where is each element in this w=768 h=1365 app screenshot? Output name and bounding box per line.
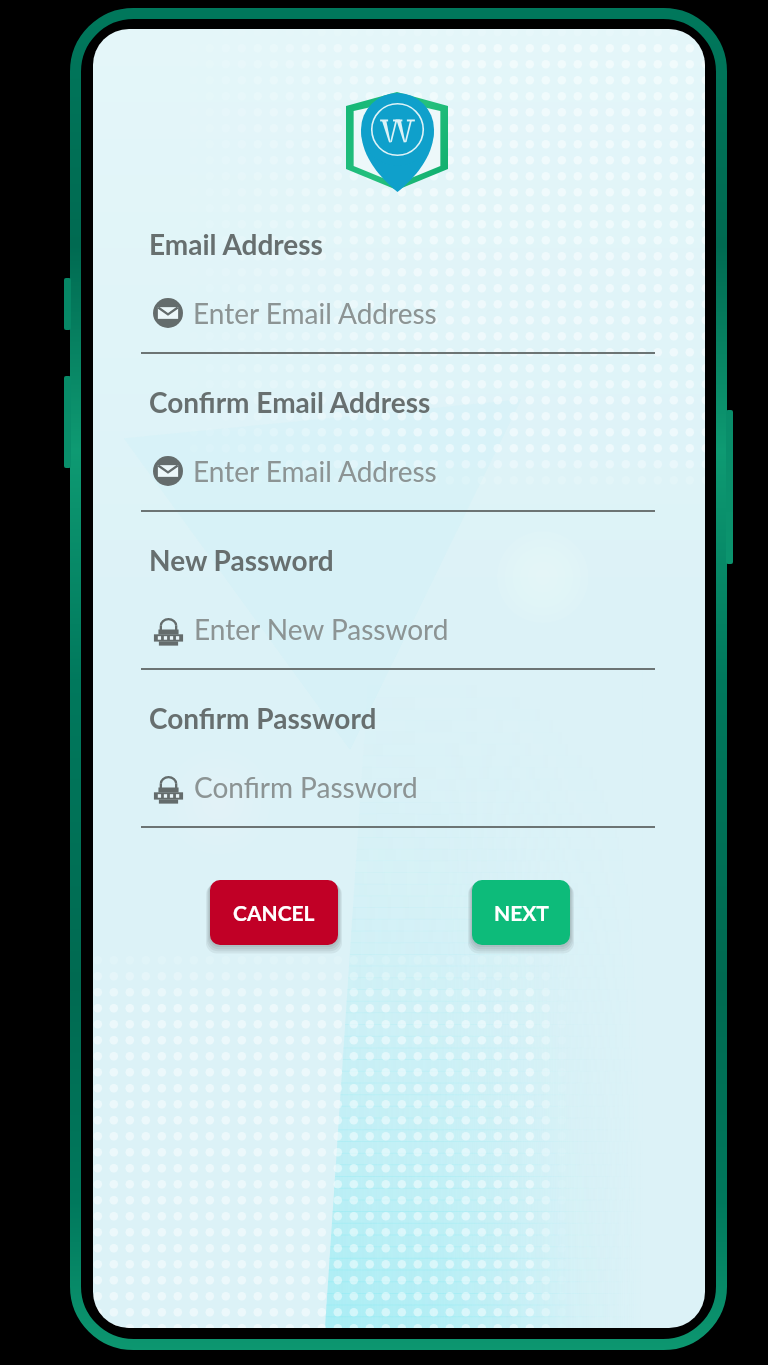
staticText: Confirm Password xyxy=(149,701,377,735)
staticText: Confirm Email Address xyxy=(149,385,431,419)
button[interactable]: CANCEL xyxy=(210,880,338,945)
staticText: Email Address xyxy=(149,227,323,261)
button[interactable]: Enter Email Address xyxy=(153,295,667,331)
staticText: Enter Email Address xyxy=(193,454,437,488)
staticText: Confirm Password xyxy=(194,770,418,804)
staticText: NEXT xyxy=(494,900,549,925)
button[interactable]: Confirm Password xyxy=(153,769,667,805)
button[interactable]: NEXT xyxy=(472,880,570,945)
staticText: New Password xyxy=(149,543,334,577)
button[interactable]: Enter New Password xyxy=(153,611,667,647)
staticText: Enter Email Address xyxy=(193,296,437,330)
button[interactable]: Enter Email Address xyxy=(153,453,667,489)
staticText: CANCEL xyxy=(233,900,315,925)
staticText: Enter New Password xyxy=(194,612,449,646)
